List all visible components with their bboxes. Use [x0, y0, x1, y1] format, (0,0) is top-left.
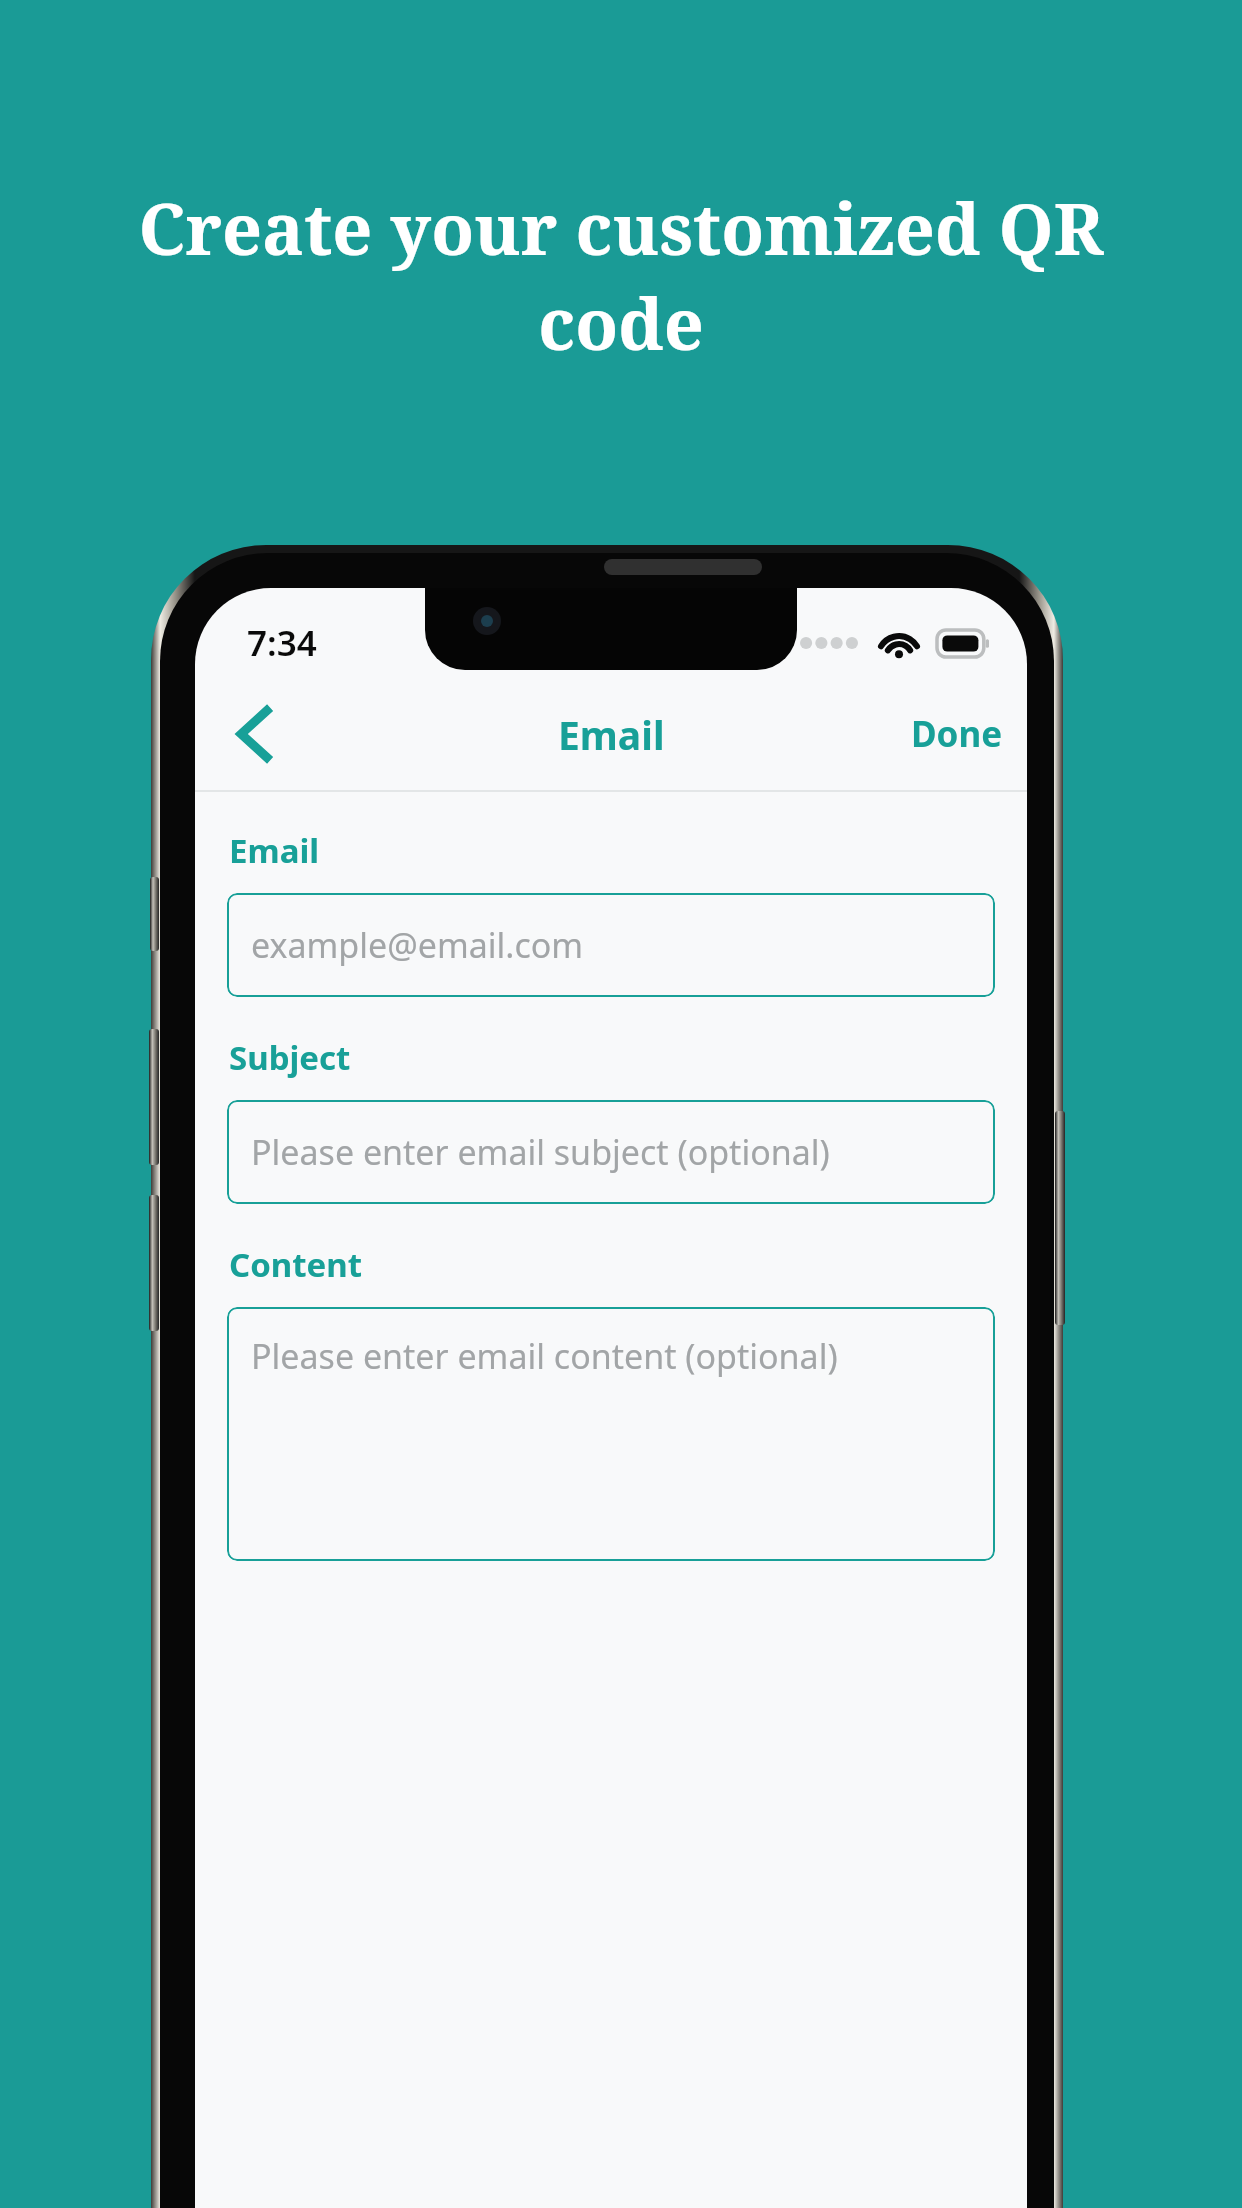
- staticText: Please enter email content (optional): [251, 1333, 838, 1379]
- button[interactable]: Back: [211, 691, 297, 777]
- staticText: Content: [229, 1242, 363, 1287]
- button[interactable]: Done: [887, 694, 1027, 774]
- button[interactable]: Please enter email subject (optional): [227, 1100, 995, 1204]
- staticText: Done: [911, 710, 1003, 758]
- staticText: Please enter email subject (optional): [251, 1129, 830, 1175]
- button[interactable]: example@email.com: [227, 893, 995, 997]
- staticText: Subject: [229, 1035, 351, 1080]
- staticText: Email: [229, 828, 320, 873]
- button[interactable]: Please enter email content (optional): [227, 1307, 995, 1561]
- staticText: Email: [558, 708, 665, 761]
- staticText: 7:34: [247, 619, 317, 667]
- staticText: example@email.com: [251, 922, 584, 968]
- staticText: Create your customized QR code: [100, 180, 1142, 370]
